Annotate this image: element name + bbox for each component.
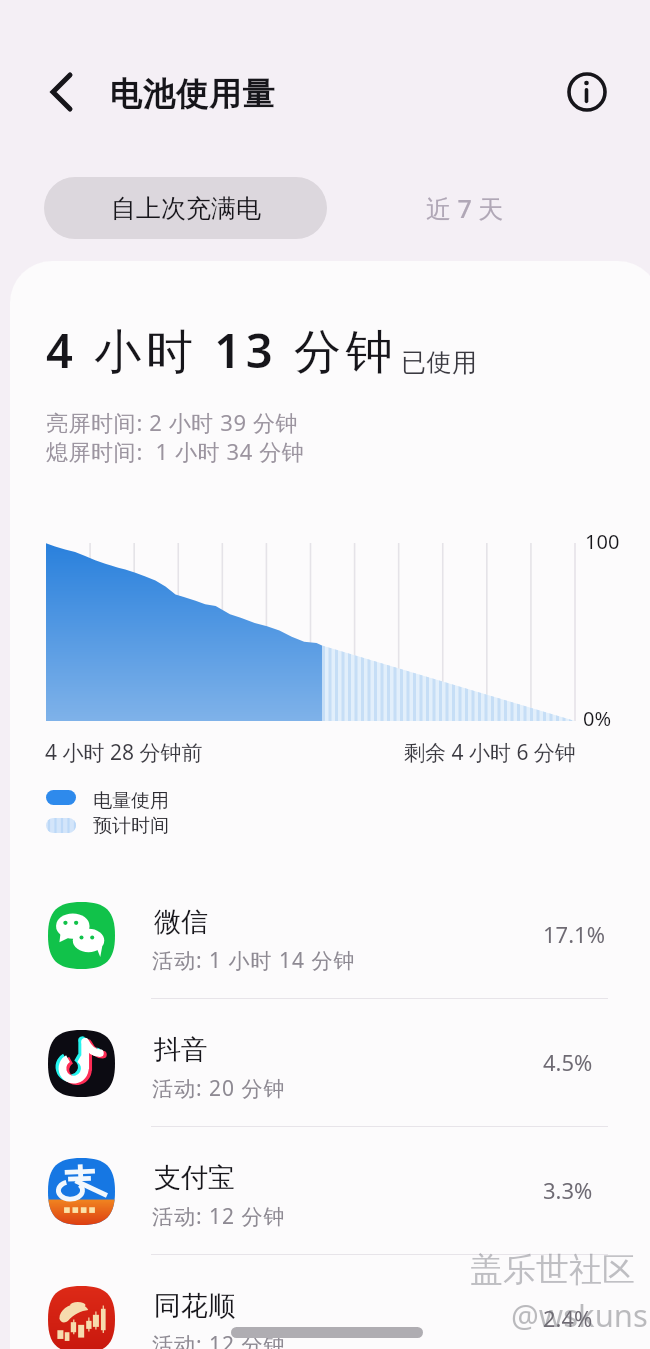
staticText: 活动: 12 分钟	[152, 1330, 286, 1349]
staticText: 剩余 4 小时 6 分钟	[404, 738, 576, 767]
staticText: 17.1%	[543, 919, 605, 949]
staticText: 2.4%	[543, 1303, 593, 1333]
staticText: 电量使用	[93, 789, 169, 813]
staticText: 电池使用量	[109, 74, 275, 114]
staticText: @wskuns	[511, 1294, 648, 1336]
staticText: 4.5%	[543, 1047, 593, 1077]
staticText: 盖乐世社区	[470, 1249, 635, 1291]
staticText: 预计时间	[93, 814, 169, 838]
staticText: 0%	[583, 705, 612, 732]
button[interactable]: Information	[562, 67, 612, 117]
staticText: 自上次充满电	[111, 193, 261, 224]
staticText: 活动: 1 小时 14 分钟	[152, 946, 356, 975]
staticText: 微信	[154, 905, 208, 939]
staticText: 活动: 20 分钟	[152, 1074, 286, 1103]
button[interactable]: 同花顺	[10, 1255, 635, 1349]
button[interactable]: 支付宝	[10, 1127, 635, 1255]
button[interactable]: 抖音	[10, 999, 635, 1127]
staticText: 100	[585, 528, 620, 555]
staticText: 活动: 12 分钟	[152, 1202, 286, 1231]
staticText: 4 小时 13 分钟	[46, 318, 398, 382]
staticText: 支付宝	[154, 1161, 235, 1195]
button[interactable]: Back	[26, 67, 76, 117]
staticText: 亮屏时间: 2 小时 39 分钟	[46, 407, 299, 437]
button[interactable]: 微信	[10, 871, 635, 999]
staticText: 同花顺	[154, 1289, 235, 1323]
staticText: 抖音	[154, 1033, 208, 1067]
button[interactable]: 自上次充满电	[44, 177, 327, 239]
staticText: 3.3%	[543, 1175, 593, 1205]
staticText: 已使用	[401, 347, 478, 378]
staticText: 4 小时 28 分钟前	[45, 738, 203, 767]
staticText: 近 7 天	[426, 191, 504, 225]
button[interactable]: 近 7 天	[340, 177, 590, 239]
staticText: 熄屏时间: 1 小时 34 分钟	[46, 436, 305, 466]
